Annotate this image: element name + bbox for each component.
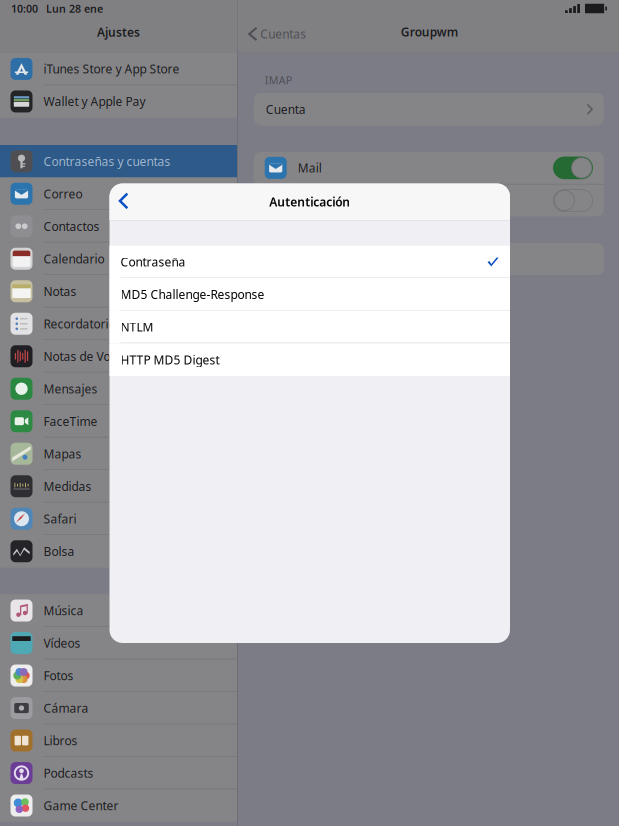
- button[interactable]: iTunes Store y App Store: [0, 53, 237, 85]
- staticText: Bolsa: [43, 543, 74, 559]
- button[interactable]: Música: [0, 594, 237, 627]
- staticText: Ajustes: [97, 24, 140, 40]
- button[interactable]: Notas de Voz: [0, 340, 237, 372]
- staticText: Mapas: [43, 446, 81, 462]
- staticText: NTLM: [120, 319, 153, 335]
- staticText: Wallet y Apple Pay: [43, 93, 145, 109]
- button[interactable]: Fotos: [0, 659, 237, 692]
- button[interactable]: Libros: [0, 724, 237, 757]
- staticText: Cámara: [43, 700, 88, 716]
- staticText: iTunes Store y App Store: [43, 61, 179, 77]
- button[interactable]: Mapas: [0, 437, 237, 470]
- button[interactable]: NTLM: [109, 311, 510, 343]
- staticText: Recordatorios: [43, 316, 121, 332]
- button[interactable]: MD5 Challenge-Response: [109, 278, 510, 311]
- button[interactable]: Atrás: [109, 183, 142, 218]
- button[interactable]: Contactos: [0, 210, 237, 242]
- staticText: Música: [43, 603, 83, 618]
- button[interactable]: Cuentas: [238, 18, 306, 50]
- button[interactable]: Cámara: [0, 692, 237, 724]
- button[interactable]: Bolsa: [0, 535, 237, 567]
- staticText: Contraseña: [120, 254, 185, 270]
- button[interactable]: Medidas: [0, 470, 237, 502]
- button[interactable]: Contraseña: [109, 246, 510, 278]
- button[interactable]: Desactivar Mail: [553, 156, 593, 179]
- staticText: Contactos: [43, 218, 99, 234]
- button[interactable]: Safari: [0, 502, 237, 535]
- staticText: Podcasts: [43, 765, 93, 781]
- staticText: Groupwm: [401, 24, 459, 40]
- staticText: Mensajes: [43, 381, 97, 397]
- button[interactable]: Correo: [0, 177, 237, 210]
- staticText: Notas: [43, 283, 76, 299]
- staticText: MD5 Challenge-Response: [120, 286, 264, 302]
- staticText: Notas de Voz: [43, 348, 116, 364]
- button[interactable]: Game Center: [0, 789, 237, 822]
- staticText: Autenticación: [269, 194, 350, 210]
- button[interactable]: Cuenta: [254, 93, 604, 126]
- button[interactable]: Podcasts: [0, 757, 237, 789]
- staticText: Calendario: [43, 251, 104, 267]
- button[interactable]: HTTP MD5 Digest: [109, 343, 510, 376]
- button[interactable]: Notas: [0, 275, 237, 307]
- button[interactable]: FaceTime: [0, 405, 237, 437]
- staticText: HTTP MD5 Digest: [120, 352, 219, 368]
- button[interactable]: Activar Notas: [553, 189, 593, 212]
- staticText: Mail: [298, 160, 322, 176]
- staticText: Game Center: [43, 798, 118, 813]
- button[interactable]: Contraseñas y cuentas: [0, 145, 237, 177]
- staticText: Lun 28 ene: [46, 1, 103, 16]
- staticText: Cuentas: [260, 26, 306, 42]
- staticText: Cuenta: [266, 101, 306, 117]
- staticText: Safari: [43, 511, 76, 527]
- staticText: Fotos: [43, 668, 73, 683]
- staticText: Medidas: [43, 478, 91, 494]
- button[interactable]: Mensajes: [0, 372, 237, 405]
- staticText: IMAP: [265, 73, 292, 87]
- staticText: FaceTime: [43, 413, 97, 429]
- button[interactable]: Recordatorios: [0, 307, 237, 340]
- staticText: Notas: [298, 193, 331, 208]
- staticText: Correo: [43, 186, 82, 202]
- button[interactable]: Calendario: [0, 242, 237, 275]
- staticText: Contraseñas y cuentas: [43, 153, 170, 169]
- staticText: 10:00: [11, 1, 38, 16]
- button[interactable]: Vídeos: [0, 627, 237, 659]
- button[interactable]: Wallet y Apple Pay: [0, 85, 237, 118]
- staticText: Libros: [43, 733, 77, 748]
- staticText: Vídeos: [43, 635, 80, 651]
